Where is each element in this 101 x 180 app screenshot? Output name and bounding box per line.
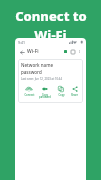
staticText: Wi-Fi [34, 26, 67, 44]
button[interactable]: Network name [18, 59, 83, 103]
staticText: Copy [58, 93, 65, 97]
button[interactable]: Back [18, 48, 26, 56]
staticText: password [21, 69, 42, 75]
button[interactable]: More options [76, 48, 83, 55]
staticText: Share [71, 93, 78, 97]
staticText: Connect to [15, 7, 87, 25]
staticText: Connect [24, 93, 35, 97]
staticText: Copy password [39, 93, 51, 99]
button[interactable]: Status [62, 48, 69, 55]
staticText: 9:41 [18, 40, 25, 45]
staticText: Network name [21, 62, 54, 68]
button[interactable]: Share [69, 85, 80, 98]
button[interactable]: Saved networks [69, 48, 76, 55]
button[interactable]: Connect [21, 85, 37, 98]
staticText: Last seen: Jun 12, 2023 at 10:44 [21, 77, 63, 81]
button[interactable]: Copy password [37, 85, 53, 100]
button[interactable]: Copy [53, 85, 69, 98]
staticText: Wi-Fi [27, 48, 39, 55]
